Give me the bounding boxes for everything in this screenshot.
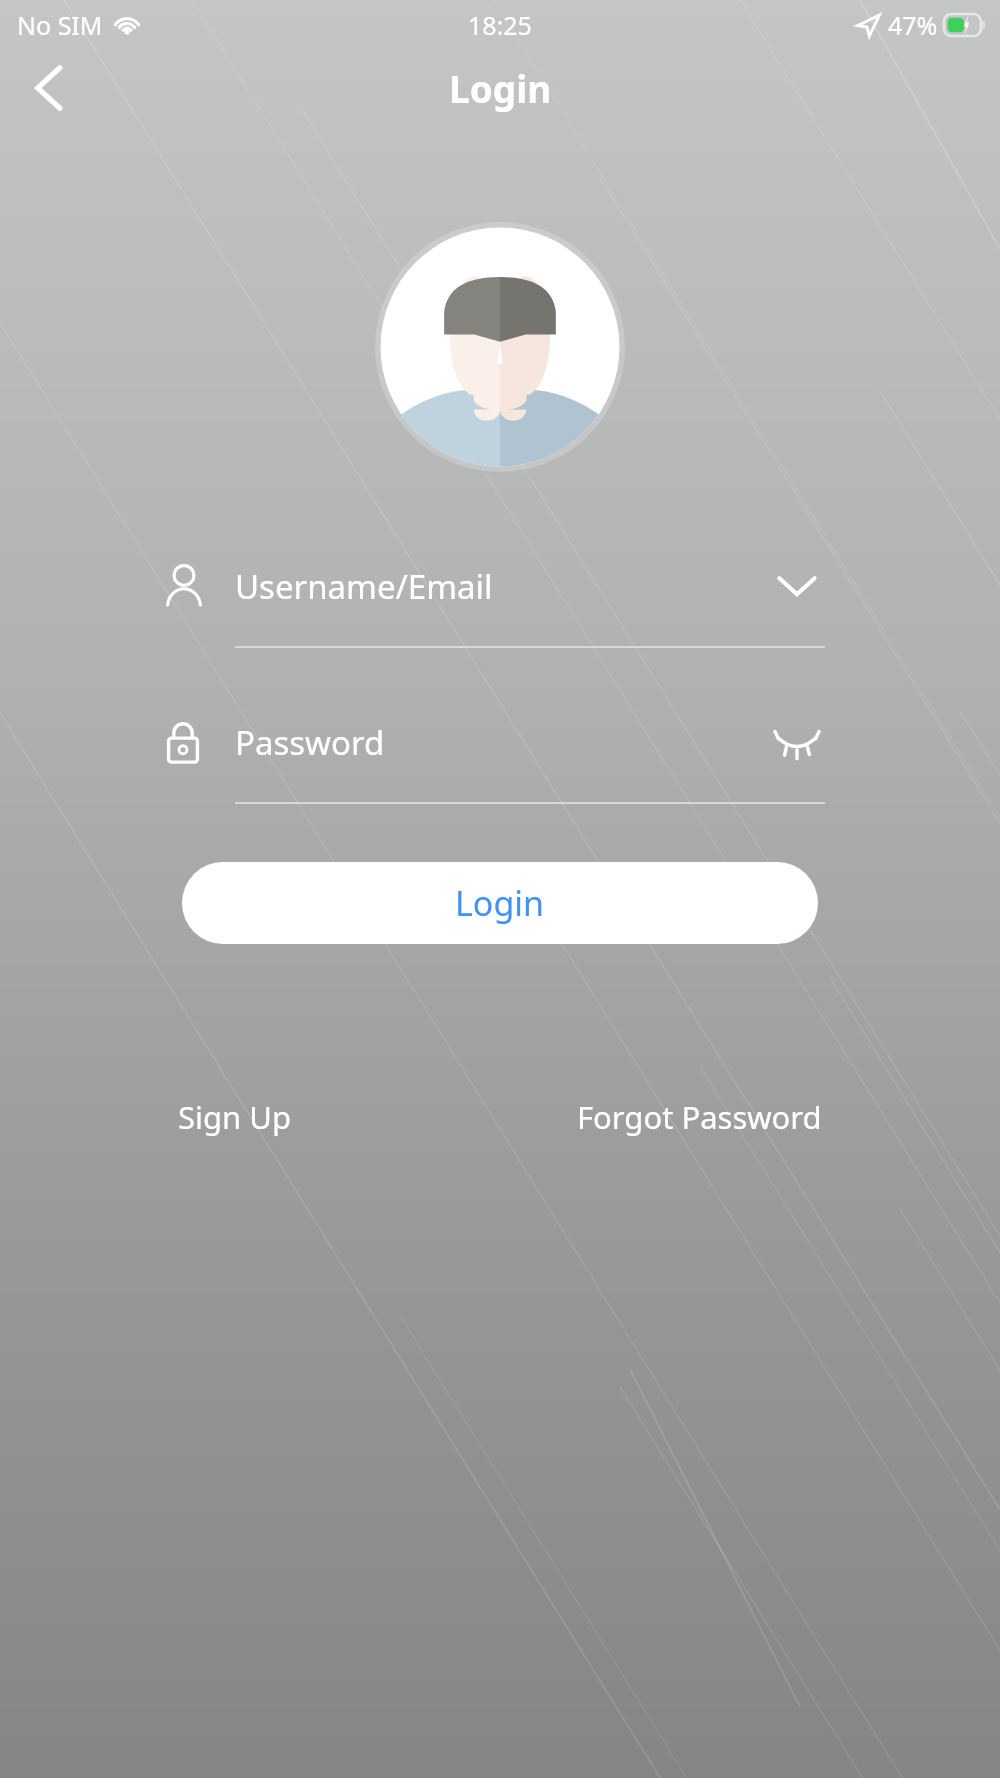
button[interactable]: Sign Up — [178, 1086, 292, 1148]
button[interactable]: Forgot Password — [577, 1086, 822, 1148]
staticText: Sign Up — [178, 1096, 292, 1138]
staticText: Forgot Password — [577, 1096, 822, 1138]
button[interactable]: Show saved accounts — [769, 558, 825, 614]
staticText: No SIM — [17, 8, 103, 42]
staticText: Login — [449, 63, 552, 113]
button[interactable]: Show password — [769, 714, 825, 770]
button[interactable]: Username/Email — [163, 558, 825, 648]
staticText: Password — [235, 720, 385, 765]
button[interactable]: Back — [14, 53, 84, 123]
staticText: Login — [455, 880, 545, 926]
button[interactable]: Login — [182, 862, 818, 944]
staticText: 18:25 — [468, 8, 532, 42]
staticText: Username/Email — [235, 564, 493, 609]
button[interactable]: Password — [163, 714, 825, 804]
staticText: 47% — [888, 8, 938, 42]
